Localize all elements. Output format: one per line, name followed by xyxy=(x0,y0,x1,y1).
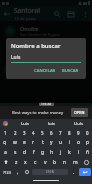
button[interactable]: i xyxy=(65,137,74,147)
staticText: u xyxy=(59,139,63,146)
staticText: ?123 xyxy=(3,170,11,175)
staticText: ñ xyxy=(86,149,90,156)
staticText: p xyxy=(86,139,90,146)
button[interactable]: m xyxy=(70,157,80,167)
button[interactable]: 5 xyxy=(38,128,47,137)
staticText: r xyxy=(32,139,35,146)
staticText: k xyxy=(68,149,71,156)
button[interactable]: Back xyxy=(0,7,14,21)
button[interactable]: OPEN xyxy=(71,108,88,117)
button[interactable]: Calendar xyxy=(64,7,78,21)
button[interactable]: More options xyxy=(78,7,92,21)
button[interactable]: Onofre xyxy=(0,21,92,40)
button[interactable]: j xyxy=(56,147,65,157)
staticText: 2 xyxy=(14,130,17,136)
button[interactable]: w xyxy=(10,137,20,147)
staticText: 4 xyxy=(32,130,35,136)
staticText: w xyxy=(13,139,17,146)
staticText: 7 xyxy=(59,130,62,136)
staticText: CANCELAR xyxy=(34,68,56,74)
staticText: OPEN xyxy=(74,110,85,115)
button[interactable]: ?123 xyxy=(0,167,13,177)
staticText: e xyxy=(23,139,26,146)
button[interactable]: p xyxy=(83,137,92,147)
button[interactable]: Lluís xyxy=(65,119,92,128)
staticText: Onofre xyxy=(20,25,39,32)
button[interactable]: Enter xyxy=(79,168,91,176)
staticText: q xyxy=(3,139,7,146)
button[interactable]: 0 xyxy=(83,128,92,137)
staticText: Test Ad xyxy=(41,102,52,106)
staticText: o xyxy=(77,139,81,146)
staticText: z xyxy=(15,159,18,166)
button[interactable]: 4 xyxy=(29,128,38,137)
button[interactable]: 8 xyxy=(65,128,74,137)
button[interactable]: t xyxy=(38,137,47,147)
button[interactable]: e xyxy=(20,137,29,147)
staticText: m xyxy=(73,159,78,166)
staticText: San Onofre de Egipto xyxy=(20,32,61,37)
staticText: 8 xyxy=(68,130,71,136)
button[interactable]: , xyxy=(13,167,22,177)
button[interactable]: ñ xyxy=(83,147,92,157)
button[interactable]: 1 xyxy=(0,128,10,137)
button[interactable]: 6 xyxy=(47,128,56,137)
button[interactable]: CANCELAR xyxy=(32,67,58,75)
button[interactable]: Backspace xyxy=(80,157,92,167)
button[interactable]: y xyxy=(47,137,56,147)
button[interactable]: c xyxy=(30,157,40,167)
button[interactable]: Antonio xyxy=(0,59,92,78)
staticText: 13 de junio xyxy=(14,16,36,21)
staticText: 3 xyxy=(23,130,26,136)
button[interactable]: b xyxy=(50,157,60,167)
staticText: h xyxy=(50,149,54,156)
button[interactable]: Search xyxy=(50,7,64,21)
button[interactable]: 3 xyxy=(20,128,29,137)
button[interactable]: 7 xyxy=(56,128,65,137)
staticText: 9 xyxy=(77,130,80,136)
staticText: 6 xyxy=(50,130,53,136)
staticText: Beato Antonio Bajewski xyxy=(20,70,65,75)
button[interactable]: BUSCAR xyxy=(60,67,81,75)
staticText: j xyxy=(60,149,62,156)
button[interactable]: . xyxy=(69,167,78,177)
button[interactable]: n xyxy=(60,157,70,167)
staticText: y xyxy=(50,139,53,146)
button[interactable]: Luis xyxy=(11,119,38,128)
button[interactable]: a xyxy=(0,147,10,157)
staticText: c xyxy=(34,159,37,166)
button[interactable]: k xyxy=(65,147,74,157)
button[interactable]: 2 xyxy=(10,128,20,137)
staticText: Lluís xyxy=(74,121,83,127)
button[interactable]: o xyxy=(74,137,83,147)
button[interactable]: l xyxy=(74,147,83,157)
staticText: l xyxy=(78,149,80,156)
staticText: d xyxy=(23,149,27,156)
button[interactable]: u xyxy=(56,137,65,147)
button[interactable]: Emoji xyxy=(22,167,31,177)
staticText: g xyxy=(41,149,45,156)
button[interactable]: d xyxy=(20,147,29,157)
staticText: n xyxy=(63,159,67,166)
staticText: Best ways to make money xyxy=(12,110,64,116)
staticText: i xyxy=(69,139,71,146)
staticText: v xyxy=(44,159,47,166)
button[interactable]: h xyxy=(47,147,56,157)
button[interactable]: g xyxy=(38,147,47,157)
button[interactable]: 9 xyxy=(74,128,83,137)
staticText: 1 xyxy=(4,130,7,136)
staticText: Santoral xyxy=(14,6,40,15)
button[interactable]: z xyxy=(12,157,21,167)
staticText: x xyxy=(24,159,27,166)
button[interactable]: f xyxy=(29,147,38,157)
staticText: a xyxy=(4,149,7,156)
button[interactable]: Shift xyxy=(0,157,12,167)
staticText: 0 xyxy=(86,130,89,136)
button[interactable]: v xyxy=(40,157,50,167)
button[interactable]: Space xyxy=(32,169,68,175)
button[interactable]: x xyxy=(21,157,30,167)
button[interactable]: luis xyxy=(38,119,65,128)
button[interactable]: r xyxy=(29,137,38,147)
button[interactable]: s xyxy=(10,147,20,157)
button[interactable]: q xyxy=(0,137,10,147)
